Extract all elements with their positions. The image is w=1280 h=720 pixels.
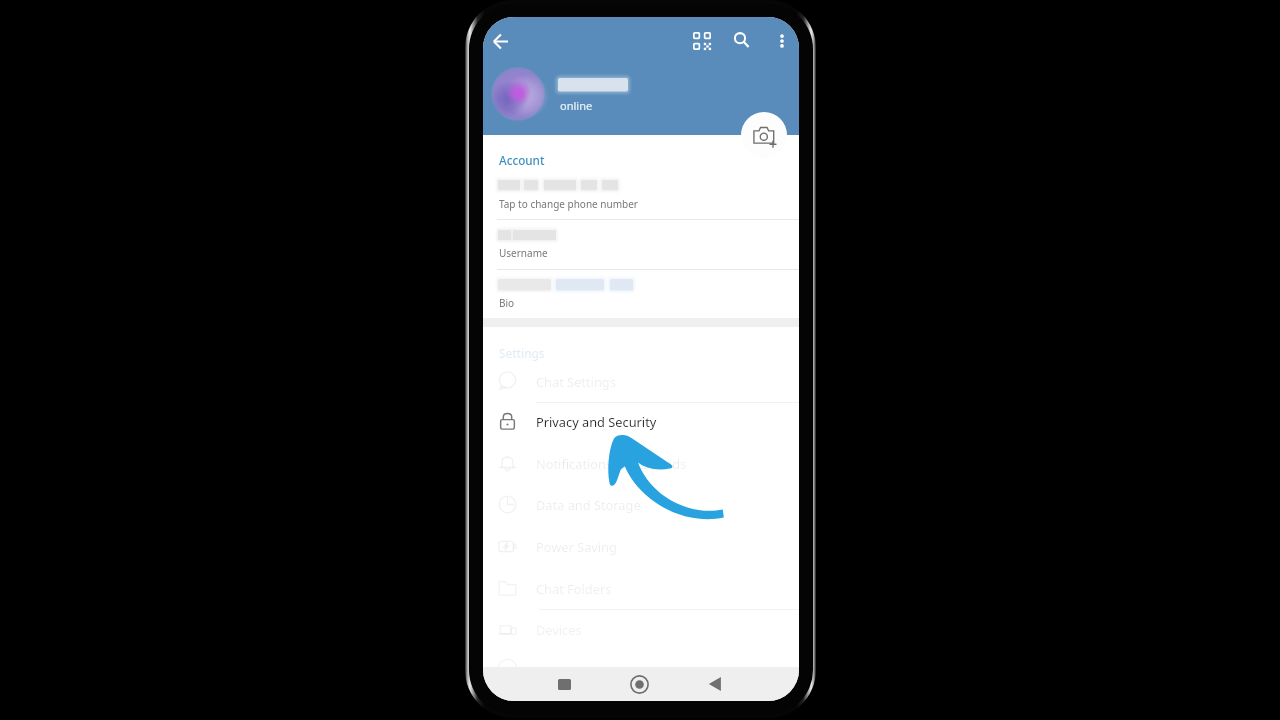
button[interactable]: Search xyxy=(726,24,760,58)
button[interactable]: Back xyxy=(483,24,517,58)
button[interactable]: Profile photo xyxy=(485,61,551,127)
button[interactable]: More options xyxy=(765,24,799,58)
staticText: Devices xyxy=(536,621,582,638)
staticText: Chat Folders xyxy=(536,580,612,597)
button[interactable] xyxy=(483,169,799,216)
button[interactable]: Notifications and Sounds xyxy=(483,442,799,484)
button[interactable]: Home xyxy=(618,667,660,701)
staticText: Username xyxy=(499,246,548,260)
staticText: Bio xyxy=(499,296,515,310)
button[interactable] xyxy=(483,219,799,265)
staticText: Settings xyxy=(499,345,545,361)
button[interactable] xyxy=(483,269,799,315)
button[interactable]: Privacy and Security xyxy=(483,400,799,442)
staticText: Power Saving xyxy=(536,538,617,555)
button[interactable]: Scan QR code xyxy=(685,24,719,58)
staticText: Notifications and Sounds xyxy=(536,455,687,472)
staticText: Account xyxy=(499,152,545,168)
staticText: Data and Storage xyxy=(536,496,641,513)
staticText: Tap to change phone number xyxy=(499,197,638,211)
staticText: Privacy and Security xyxy=(536,413,657,430)
button[interactable]: Back xyxy=(694,667,736,701)
button[interactable]: Recent apps xyxy=(543,667,585,701)
button[interactable]: Data and Storage xyxy=(483,483,799,525)
staticText: Chat Settings xyxy=(536,373,616,390)
staticText: online xyxy=(560,98,593,113)
button[interactable]: Change profile photo xyxy=(741,112,787,158)
